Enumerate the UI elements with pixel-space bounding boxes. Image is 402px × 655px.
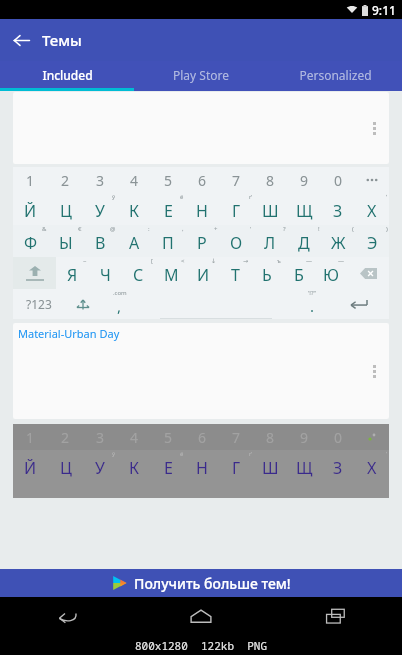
button[interactable]: @	[83, 225, 117, 257]
button[interactable]: &	[13, 225, 48, 257]
button[interactable]: 2	[48, 424, 83, 450]
button[interactable]: (	[321, 225, 355, 257]
button[interactable]: →	[219, 257, 251, 289]
button[interactable]: 5	[151, 424, 185, 450]
button[interactable]: ʼ	[355, 450, 389, 482]
button[interactable]: 9	[287, 167, 321, 193]
button[interactable]: 6	[185, 424, 219, 450]
button[interactable]	[355, 424, 389, 450]
button[interactable]: ў	[83, 193, 117, 225]
button[interactable]: Recent apps	[268, 597, 402, 635]
button[interactable]: К	[117, 193, 151, 225]
button[interactable]: 9	[287, 424, 321, 450]
button[interactable]: ё	[151, 193, 185, 225]
button[interactable]: '	[219, 225, 253, 257]
button[interactable]: ґ	[219, 193, 253, 225]
button[interactable]: Back	[0, 597, 134, 635]
button[interactable]: .com	[101, 289, 138, 319]
button[interactable]: 8	[253, 424, 287, 450]
button[interactable]: —	[315, 257, 347, 289]
button[interactable]: ъ	[251, 257, 283, 289]
button[interactable]: ґ	[219, 450, 253, 482]
button[interactable]: Material-Urban Day	[13, 323, 389, 419]
button[interactable]: ?123	[13, 289, 64, 319]
button[interactable]: Ц	[48, 193, 83, 225]
button[interactable]: 8	[253, 167, 287, 193]
button[interactable]: Home	[134, 597, 268, 635]
button[interactable]: Ш	[253, 450, 287, 482]
staticText: Ч	[100, 264, 111, 286]
button[interactable]: 4	[117, 167, 151, 193]
button[interactable]: '!?"	[294, 289, 331, 319]
staticText: Ш	[262, 200, 279, 222]
button[interactable]: ?	[253, 225, 287, 257]
button[interactable]	[347, 257, 389, 289]
button[interactable]	[64, 289, 101, 319]
button[interactable]: ʼ	[355, 193, 389, 225]
button[interactable]	[331, 289, 389, 319]
button[interactable]	[355, 167, 389, 193]
button[interactable]: ё	[151, 450, 185, 482]
button[interactable]: Н	[185, 193, 219, 225]
button[interactable]: Получить больше тем!	[0, 569, 402, 597]
button[interactable]: 5	[151, 167, 185, 193]
button[interactable]: З	[321, 450, 355, 482]
button[interactable]: €	[48, 225, 83, 257]
button[interactable]: )	[355, 225, 389, 257]
staticText: П	[162, 232, 174, 254]
button[interactable]: Back	[0, 19, 42, 61]
button[interactable]: ~	[56, 257, 89, 289]
button[interactable]: Ш	[253, 193, 287, 225]
button[interactable]: :	[117, 225, 151, 257]
button[interactable]: 4	[117, 424, 151, 450]
button[interactable]: More options	[365, 359, 383, 383]
button[interactable]: ­	[89, 257, 122, 289]
button[interactable]: Н	[185, 450, 219, 482]
button[interactable]	[138, 289, 294, 319]
button[interactable]: 0	[321, 167, 355, 193]
button[interactable]: !	[287, 225, 321, 257]
button[interactable]: Щ	[287, 193, 321, 225]
staticText: 9	[300, 428, 309, 447]
button[interactable]	[13, 257, 56, 289]
button[interactable]: ,	[151, 225, 185, 257]
button[interactable]: З	[321, 193, 355, 225]
button[interactable]: Personalized	[268, 61, 402, 88]
button[interactable]: 3	[83, 424, 117, 450]
button[interactable]: +	[185, 225, 219, 257]
button[interactable]: 7	[219, 167, 253, 193]
button[interactable]: 0	[321, 424, 355, 450]
button[interactable]: Й	[13, 193, 48, 225]
button[interactable]: Included	[0, 61, 134, 88]
staticText: 0	[334, 428, 343, 447]
button[interactable]: Щ	[287, 450, 321, 482]
button[interactable]: Й	[13, 450, 48, 482]
button[interactable]: <	[155, 257, 187, 289]
button[interactable]: 1	[13, 167, 48, 193]
button[interactable]: More options	[365, 116, 383, 140]
button[interactable]: —	[283, 257, 315, 289]
button[interactable]: 3	[83, 167, 117, 193]
button[interactable]: К	[117, 450, 151, 482]
button[interactable]: 6	[185, 167, 219, 193]
button[interactable]: Play Store	[134, 61, 268, 88]
button[interactable]: [	[122, 257, 155, 289]
button[interactable]: Ц	[48, 450, 83, 482]
button[interactable]: ↓	[187, 257, 219, 289]
button[interactable]: ў	[83, 450, 117, 482]
button[interactable]: 2	[48, 167, 83, 193]
